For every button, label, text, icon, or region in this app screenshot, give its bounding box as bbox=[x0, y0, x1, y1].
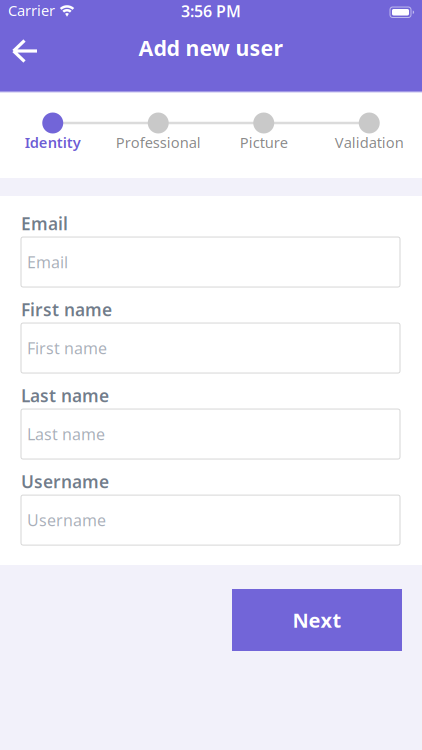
staticText: Email bbox=[27, 251, 68, 273]
staticText: Email bbox=[21, 212, 68, 235]
staticText: Last name bbox=[27, 423, 105, 445]
staticText: Add new user bbox=[138, 33, 283, 62]
staticText: Validation bbox=[335, 132, 404, 152]
staticText: First name bbox=[21, 298, 112, 321]
button[interactable]: Last name bbox=[21, 409, 400, 459]
staticText: First name bbox=[27, 337, 107, 359]
staticText: Identity bbox=[25, 132, 81, 152]
button[interactable]: Back bbox=[0, 0, 39, 63]
button[interactable]: Username bbox=[21, 495, 400, 545]
staticText: Username bbox=[27, 509, 106, 531]
button[interactable]: First name bbox=[21, 323, 400, 373]
staticText: Carrier bbox=[8, 0, 55, 20]
staticText: 3:56 PM bbox=[181, 0, 241, 22]
button[interactable]: Email bbox=[21, 237, 400, 287]
staticText: Username bbox=[21, 470, 109, 493]
staticText: Last name bbox=[21, 384, 109, 407]
staticText: Picture bbox=[240, 132, 288, 152]
staticText: Professional bbox=[116, 132, 201, 152]
staticText: Next bbox=[292, 607, 341, 633]
button[interactable]: Next bbox=[232, 589, 402, 651]
